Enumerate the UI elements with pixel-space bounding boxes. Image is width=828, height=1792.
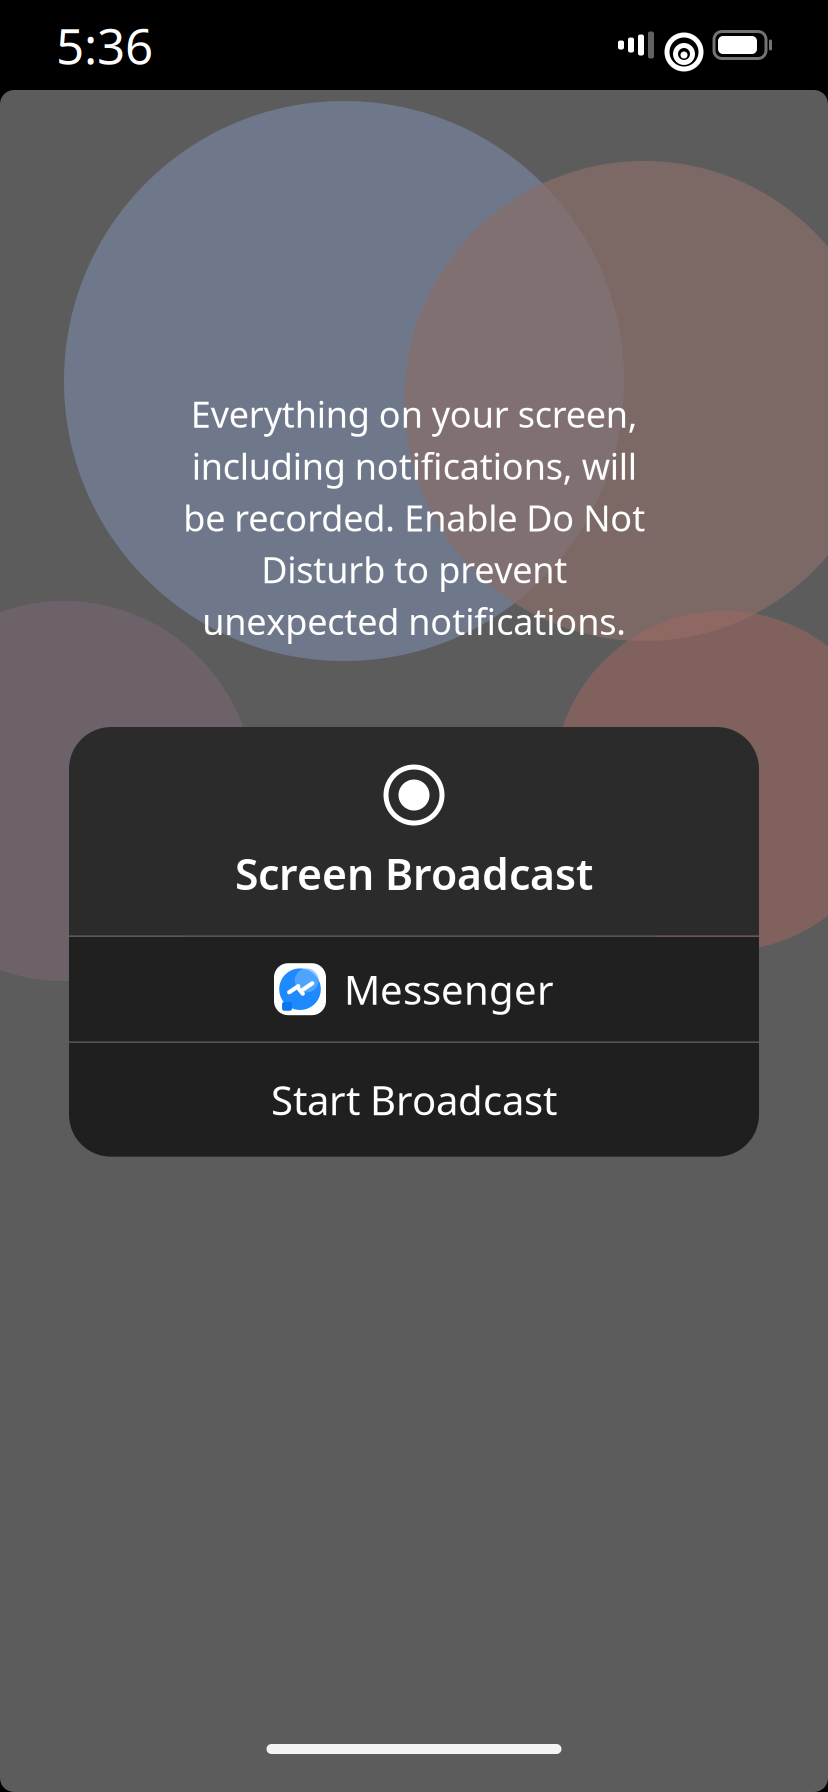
staticText: Everything on your screen, including not… — [183, 390, 645, 645]
staticText: Screen Broadcast — [235, 845, 593, 902]
button[interactable]: Messenger — [69, 937, 759, 1042]
staticText: Start Broadcast — [271, 1073, 557, 1126]
staticText: 5:36 — [56, 12, 153, 78]
button[interactable]: Start Broadcast — [69, 1043, 759, 1157]
staticText: Messenger — [344, 963, 554, 1016]
